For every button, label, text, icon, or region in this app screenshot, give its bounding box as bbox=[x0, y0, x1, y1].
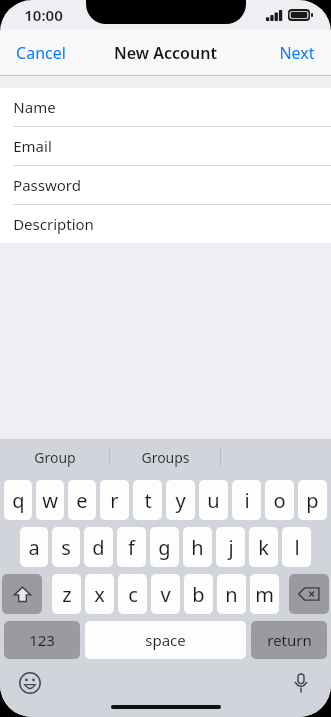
staticText: l bbox=[294, 534, 300, 561]
button[interactable]: y bbox=[166, 480, 195, 520]
staticText: 123 bbox=[29, 630, 55, 650]
button[interactable]: e bbox=[68, 480, 96, 520]
button[interactable]: j bbox=[216, 527, 245, 567]
button[interactable]: Password bbox=[0, 166, 331, 204]
staticText: j bbox=[228, 534, 234, 561]
staticText: w bbox=[42, 487, 58, 514]
button[interactable]: k bbox=[249, 527, 278, 567]
staticText: Description bbox=[13, 214, 94, 234]
button[interactable]: i bbox=[232, 480, 261, 520]
staticText: y bbox=[175, 487, 186, 514]
button[interactable]: g bbox=[150, 527, 179, 567]
button[interactable]: w bbox=[36, 480, 64, 520]
staticText: z bbox=[62, 581, 72, 608]
button[interactable]: o bbox=[265, 480, 294, 520]
staticText: return bbox=[267, 630, 312, 650]
button[interactable]: Dictation bbox=[285, 667, 317, 699]
button[interactable]: Shift bbox=[2, 574, 42, 614]
staticText: space bbox=[145, 630, 186, 650]
button[interactable]: m bbox=[250, 574, 279, 614]
staticText: Group bbox=[34, 448, 76, 467]
button[interactable]: r bbox=[100, 480, 129, 520]
button[interactable]: Emoji bbox=[14, 667, 46, 699]
button[interactable]: Description bbox=[0, 205, 331, 243]
staticText: o bbox=[273, 487, 286, 514]
staticText: Next bbox=[279, 42, 315, 64]
button[interactable]: Cancel bbox=[0, 34, 82, 72]
staticText: Cancel bbox=[16, 42, 66, 64]
button[interactable]: x bbox=[85, 574, 114, 614]
staticText: Email bbox=[13, 136, 52, 156]
staticText: f bbox=[128, 534, 135, 561]
staticText: m bbox=[255, 581, 274, 608]
staticText: b bbox=[192, 581, 205, 608]
button[interactable]: a bbox=[20, 527, 48, 567]
staticText: g bbox=[158, 534, 171, 561]
staticText: r bbox=[110, 487, 119, 514]
staticText: t bbox=[144, 487, 152, 514]
staticText: k bbox=[258, 534, 269, 561]
staticText: Password bbox=[13, 175, 81, 195]
button[interactable]: Email bbox=[0, 127, 331, 165]
button[interactable]: t bbox=[133, 480, 162, 520]
staticText: c bbox=[128, 581, 138, 608]
button[interactable]: Groups bbox=[110, 439, 220, 475]
staticText: e bbox=[76, 487, 88, 514]
staticText: s bbox=[61, 534, 71, 561]
button[interactable]: Next bbox=[263, 34, 331, 72]
staticText: p bbox=[306, 487, 319, 514]
staticText: New Account bbox=[114, 42, 217, 64]
staticText: a bbox=[28, 534, 40, 561]
staticText: h bbox=[191, 534, 204, 561]
button[interactable]: return bbox=[251, 621, 327, 659]
staticText: v bbox=[160, 581, 171, 608]
button[interactable]: Name bbox=[0, 88, 331, 126]
button[interactable]: f bbox=[117, 527, 146, 567]
button[interactable]: v bbox=[151, 574, 180, 614]
button[interactable]: q bbox=[4, 480, 32, 520]
button[interactable]: s bbox=[52, 527, 80, 567]
staticText: Groups bbox=[141, 448, 190, 467]
staticText: n bbox=[225, 581, 238, 608]
staticText: i bbox=[244, 487, 250, 514]
button[interactable]: z bbox=[52, 574, 81, 614]
button[interactable]: h bbox=[183, 527, 212, 567]
staticText: x bbox=[94, 581, 105, 608]
button[interactable]: b bbox=[184, 574, 213, 614]
button[interactable]: p bbox=[298, 480, 327, 520]
button[interactable]: l bbox=[282, 527, 311, 567]
staticText: q bbox=[12, 487, 25, 514]
button[interactable]: u bbox=[199, 480, 228, 520]
staticText: u bbox=[207, 487, 220, 514]
staticText: 10:00 bbox=[24, 5, 63, 25]
button[interactable]: c bbox=[118, 574, 147, 614]
button[interactable]: Group bbox=[0, 439, 109, 475]
button[interactable]: space bbox=[85, 621, 246, 659]
button[interactable]: 123 bbox=[4, 621, 80, 659]
button[interactable]: n bbox=[217, 574, 246, 614]
staticText: d bbox=[92, 534, 105, 561]
staticText: Name bbox=[13, 97, 56, 117]
button[interactable]: d bbox=[84, 527, 113, 567]
button[interactable]: Backspace bbox=[289, 574, 329, 614]
